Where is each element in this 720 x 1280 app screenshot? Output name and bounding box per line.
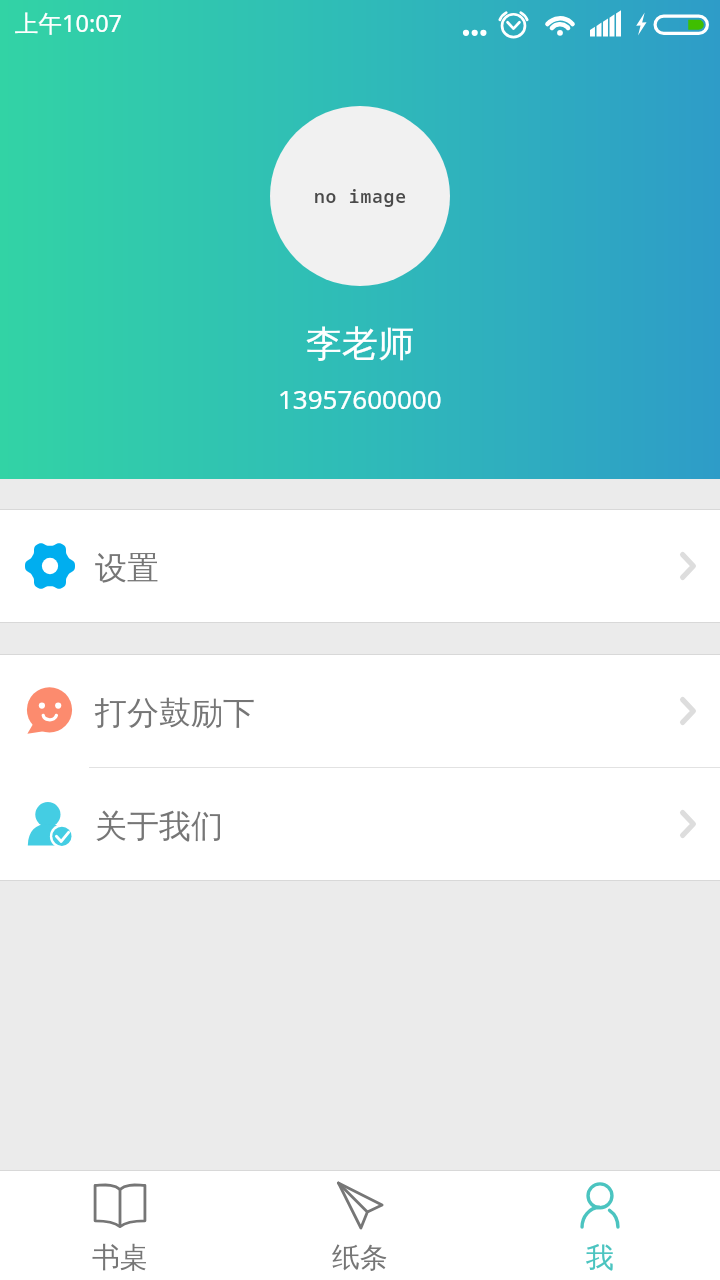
button[interactable]: 书桌 — [0, 1171, 240, 1280]
button[interactable]: 设置 — [0, 510, 720, 622]
staticText: 李老师 — [306, 321, 414, 366]
button[interactable]: Profile photo — [270, 106, 450, 286]
staticText: 纸条 — [332, 1240, 388, 1275]
button[interactable]: 打分鼓励下 — [0, 655, 720, 767]
staticText: 我 — [586, 1240, 614, 1275]
button[interactable]: 我 — [480, 1171, 720, 1280]
staticText: 13957600000 — [278, 381, 442, 416]
staticText: 书桌 — [92, 1240, 148, 1275]
staticText: 打分鼓励下 — [95, 693, 255, 733]
staticText: 关于我们 — [95, 806, 223, 846]
staticText: 上午10:07 — [15, 7, 123, 39]
button[interactable]: 纸条 — [240, 1171, 480, 1280]
button[interactable]: 关于我们 — [0, 768, 720, 880]
staticText: 设置 — [95, 548, 159, 588]
staticText: no image — [314, 184, 407, 209]
